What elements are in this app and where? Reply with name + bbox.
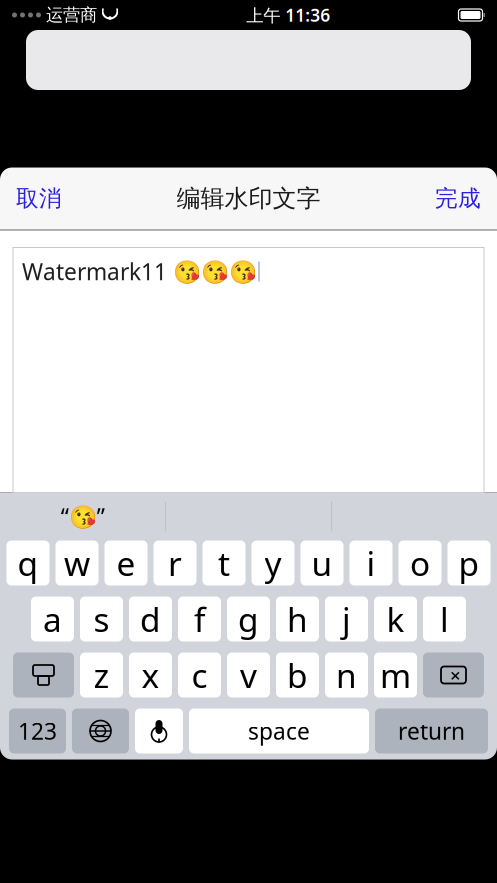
button[interactable]: r — [153, 540, 196, 585]
button[interactable]: c — [178, 652, 221, 697]
button[interactable]: z — [80, 652, 123, 697]
staticText: Watermark11 😘😘😘 — [22, 256, 257, 287]
button[interactable]: y — [251, 540, 294, 585]
button[interactable]: Delete — [423, 652, 484, 697]
button[interactable]: l — [423, 596, 466, 641]
staticText: 编辑水印文字 — [176, 184, 320, 213]
staticText: y — [264, 541, 281, 585]
button[interactable]: Next keyboard — [72, 708, 129, 753]
staticText: × — [450, 663, 461, 687]
staticText: o — [410, 541, 430, 585]
staticText: z — [93, 653, 109, 697]
staticText: e — [116, 541, 135, 585]
staticText: j — [342, 597, 351, 641]
staticText: t — [218, 541, 230, 585]
staticText: g — [238, 597, 259, 641]
button[interactable]: t — [202, 540, 245, 585]
staticText: i — [366, 541, 375, 585]
button[interactable]: p — [447, 540, 490, 585]
staticText: p — [458, 541, 479, 585]
button[interactable]: 完成 — [419, 176, 497, 220]
staticText: 完成 — [435, 185, 481, 212]
button[interactable]: f — [178, 596, 221, 641]
staticText: 123 — [18, 716, 57, 746]
staticText: space — [248, 716, 310, 746]
button[interactable]: return — [375, 708, 488, 753]
button[interactable]: 取消 — [0, 176, 78, 220]
button[interactable]: space — [189, 708, 369, 753]
staticText: f — [194, 597, 205, 641]
staticText: w — [64, 541, 90, 585]
button[interactable]: h — [276, 596, 319, 641]
staticText: 取消 — [16, 185, 62, 212]
button[interactable]: Dictation — [135, 708, 183, 753]
staticText: 上午 11:36 — [246, 3, 330, 26]
staticText: x — [141, 653, 159, 697]
staticText: r — [168, 541, 182, 585]
staticText: l — [440, 597, 449, 641]
staticText: n — [336, 653, 357, 697]
button[interactable]: b — [276, 652, 319, 697]
button[interactable]: Shift — [13, 652, 74, 697]
staticText: return — [398, 716, 465, 746]
button[interactable]: m — [374, 652, 417, 697]
button[interactable]: n — [325, 652, 368, 697]
button[interactable]: j — [325, 596, 368, 641]
button[interactable]: q — [6, 540, 49, 585]
button[interactable]: v — [227, 652, 270, 697]
button[interactable]: x — [129, 652, 172, 697]
staticText: q — [17, 541, 38, 585]
staticText: s — [93, 597, 109, 641]
button[interactable]: e — [104, 540, 147, 585]
button[interactable]: o — [398, 540, 441, 585]
staticText: m — [380, 653, 411, 697]
staticText: 运营商 — [46, 4, 97, 26]
button[interactable]: a — [31, 596, 74, 641]
button[interactable]: s — [80, 596, 123, 641]
button[interactable]: “😘” — [0, 494, 166, 538]
staticText: k — [386, 597, 404, 641]
button[interactable]: d — [129, 596, 172, 641]
staticText: u — [311, 541, 332, 585]
button[interactable]: i — [349, 540, 392, 585]
staticText: a — [43, 597, 62, 641]
button[interactable]: u — [300, 540, 343, 585]
button[interactable]: g — [227, 596, 270, 641]
button[interactable]: 123 — [9, 708, 66, 753]
staticText: “😘” — [61, 501, 105, 531]
button[interactable]: k — [374, 596, 417, 641]
staticText: h — [287, 597, 308, 641]
staticText: c — [191, 653, 207, 697]
staticText: v — [240, 653, 257, 697]
staticText: d — [140, 597, 161, 641]
staticText: b — [287, 653, 308, 697]
button[interactable]: w — [55, 540, 98, 585]
